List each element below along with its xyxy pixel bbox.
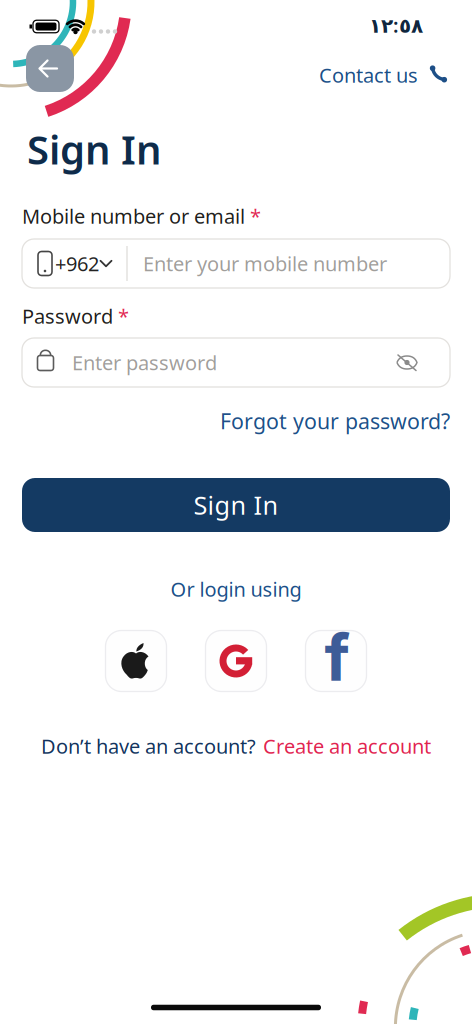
- staticText: Or login using: [170, 576, 301, 602]
- staticText: Sign In: [27, 122, 162, 175]
- button[interactable]: +962: [22, 239, 450, 288]
- staticText: *: [118, 303, 129, 329]
- staticText: Create an account: [263, 733, 431, 759]
- staticText: *: [250, 203, 261, 229]
- button[interactable]: Sign In: [22, 478, 450, 532]
- staticText: Forgot your password?: [220, 407, 450, 435]
- button[interactable]: Contact us: [21, 62, 451, 88]
- button[interactable]: f: [305, 630, 366, 691]
- staticText: Enter password: [72, 349, 217, 376]
- staticText: ١٢:٥٨: [369, 12, 423, 38]
- button[interactable]: Enter password: [22, 338, 450, 387]
- button[interactable]: [26, 45, 74, 92]
- button[interactable]: Create an account: [263, 733, 431, 759]
- staticText: Sign In: [193, 488, 278, 522]
- button[interactable]: [205, 630, 266, 691]
- button[interactable]: Don’t have an account?: [41, 733, 256, 759]
- staticText: +962: [55, 250, 99, 277]
- staticText: f: [324, 619, 349, 696]
- staticText: Enter your mobile number: [143, 250, 387, 277]
- staticText: Don’t have an account?: [41, 733, 256, 759]
- button[interactable]: [105, 630, 166, 691]
- button[interactable]: [392, 347, 422, 377]
- staticText: Contact us: [319, 62, 418, 88]
- staticText: Password: [22, 303, 113, 329]
- button[interactable]: Forgot your password?: [22, 407, 450, 435]
- staticText: Mobile number or email: [22, 203, 245, 229]
